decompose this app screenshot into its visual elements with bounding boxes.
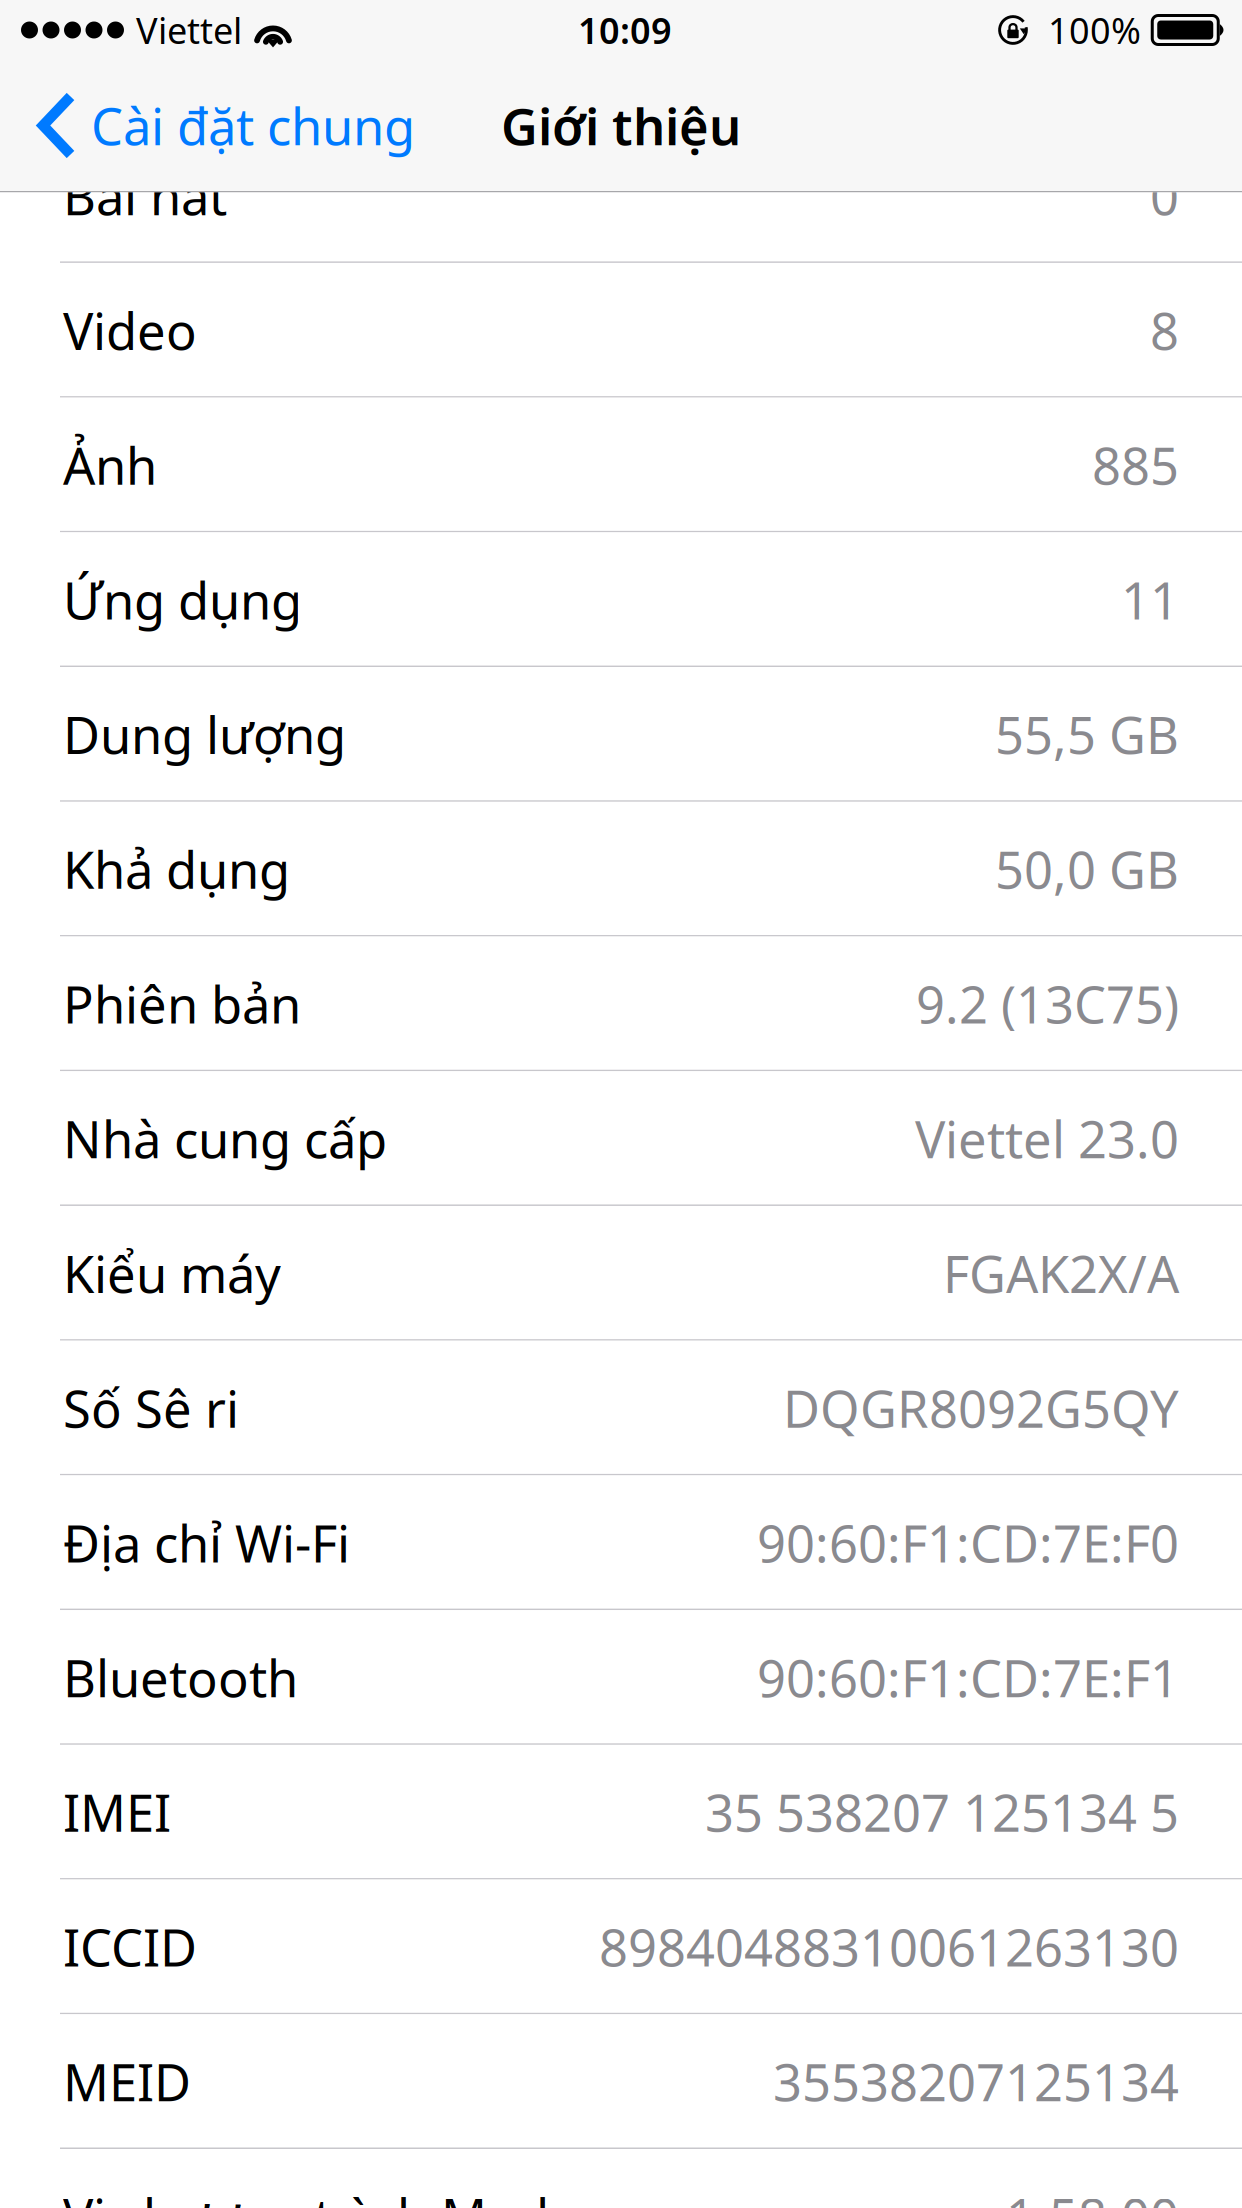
staticText: Bluetooth [63,1644,298,1711]
staticText: 11 [1121,566,1179,633]
staticText: Viettel [136,6,242,54]
staticText: MEID [63,2048,191,2115]
staticText: Giới thiệu [501,92,741,159]
staticText: 885 [1092,431,1179,499]
button[interactable]: Bài hát [0,128,1242,263]
staticText: Video [63,297,197,364]
staticText: Địa chỉ Wi-Fi [63,1509,350,1576]
staticText: ICCID [63,1913,197,1981]
button[interactable]: ICCID [0,1880,1242,2014]
button[interactable]: Ảnh [0,398,1242,532]
button[interactable]: MEID [0,2014,1242,2149]
button[interactable]: Nhà cung cấp [0,1071,1242,1206]
staticText: Kiểu máy [63,1240,281,1307]
staticText: 10:09 [578,6,672,54]
staticText: 90:60:F1:CD:7E:F0 [757,1509,1179,1576]
staticText: 1.58.00 [1006,2183,1179,2208]
staticText: IMEI [63,1779,171,1846]
staticText: 50,0 GB [995,835,1179,903]
button[interactable]: Cài đặt chung [0,60,439,191]
button[interactable]: Khả dụng [0,802,1242,936]
staticText: Cài đặt chung [91,92,415,159]
staticText: Ảnh [63,431,157,499]
staticText: Phiên bản [63,970,301,1037]
button[interactable]: Số Sê ri [0,1341,1242,1475]
button[interactable]: Kiểu máy [0,1206,1242,1341]
button[interactable]: Video [0,263,1242,398]
button[interactable]: Phiên bản [0,936,1242,1071]
staticText: Dung lượng [63,701,346,768]
staticText: Vi chương trình Modem [63,2183,625,2208]
staticText: 89840488310061263130 [599,1913,1179,1981]
staticText: 0 [1150,162,1179,229]
staticText: 90:60:F1:CD:7E:F1 [757,1644,1179,1711]
button[interactable]: Ứng dụng [0,532,1242,667]
staticText: DQGR8092G5QY [783,1374,1179,1442]
staticText: Viettel 23.0 [915,1105,1179,1172]
staticText: 9.2 (13C75) [916,970,1179,1037]
staticText: Bài hát [63,162,227,229]
staticText: Nhà cung cấp [63,1105,387,1172]
staticText: 35538207125134 [773,2048,1179,2115]
button[interactable]: Vi chương trình Modem [0,2149,1242,2208]
staticText: 35 538207 125134 5 [705,1779,1179,1846]
staticText: 100% [1048,6,1141,54]
staticText: Số Sê ri [63,1374,239,1442]
staticText: Khả dụng [63,835,290,903]
button[interactable]: Địa chỉ Wi-Fi [0,1475,1242,1610]
staticText: 8 [1150,297,1179,364]
staticText: Ứng dụng [63,566,302,633]
staticText: FGAK2X/A [943,1240,1179,1307]
button[interactable]: Bluetooth [0,1610,1242,1745]
button[interactable]: Dung lượng [0,667,1242,802]
button[interactable]: IMEI [0,1745,1242,1879]
staticText: 55,5 GB [995,701,1179,768]
